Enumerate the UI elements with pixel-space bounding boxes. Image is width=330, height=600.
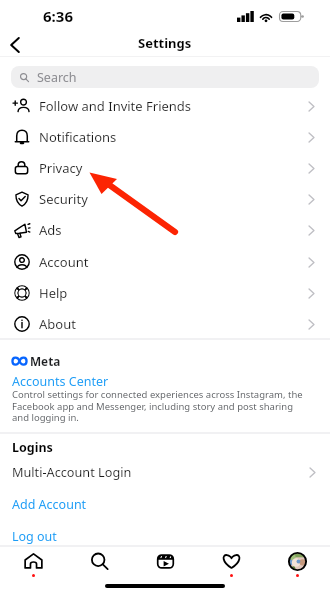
staticText: Security <box>39 190 88 208</box>
staticText: Log out <box>12 528 57 545</box>
staticText: Help <box>39 284 68 302</box>
staticText: Add Account <box>12 496 87 513</box>
button[interactable]: Search <box>11 66 319 88</box>
button[interactable]: Multi-Account Login <box>0 456 330 486</box>
staticText: Logins <box>12 439 53 456</box>
staticText: Search <box>37 69 77 86</box>
staticText: Multi-Account Login <box>12 463 132 480</box>
button[interactable]: Help <box>0 277 330 308</box>
staticText: Follow and Invite Friends <box>39 97 192 115</box>
staticText: Privacy <box>39 159 83 177</box>
button[interactable]: Accounts Center <box>12 373 109 390</box>
button[interactable]: Search <box>66 547 132 579</box>
staticText: Accounts Center <box>12 373 109 390</box>
button[interactable]: Ads <box>0 214 330 245</box>
staticText: Notifications <box>39 128 117 146</box>
button[interactable]: Profile <box>264 547 330 579</box>
staticText: Meta <box>30 353 61 369</box>
button[interactable]: About <box>0 308 330 339</box>
button[interactable]: Notifications <box>0 121 330 152</box>
button[interactable]: Log out <box>0 521 330 552</box>
button[interactable]: Reels <box>132 547 198 579</box>
button[interactable]: Account <box>0 246 330 277</box>
button[interactable]: Back <box>1 31 29 59</box>
staticText: 6:36 <box>43 6 73 26</box>
button[interactable]: Home <box>0 547 66 579</box>
staticText: About <box>39 315 76 333</box>
button[interactable]: Security <box>0 183 330 214</box>
staticText: Account <box>39 253 89 271</box>
staticText: Control settings for connected experienc… <box>12 388 312 424</box>
button[interactable]: Activity <box>198 547 264 579</box>
staticText: Settings <box>138 34 192 52</box>
button[interactable]: Privacy <box>0 152 330 183</box>
staticText: Ads <box>39 221 62 239</box>
button[interactable]: Add Account <box>0 489 330 520</box>
button[interactable]: Follow and Invite Friends <box>0 90 330 121</box>
